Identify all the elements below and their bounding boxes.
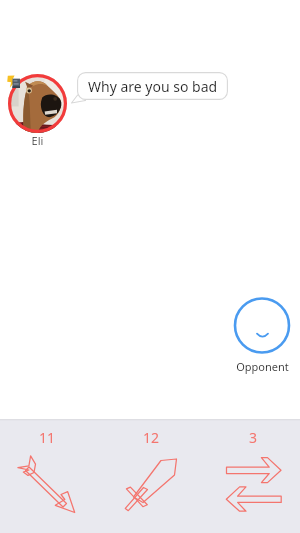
button[interactable]: Opponent bbox=[232, 298, 292, 358]
staticText: Why are you so bad bbox=[88, 77, 218, 96]
staticText: Opponent bbox=[225, 359, 300, 374]
button[interactable]: Arrow attack, 11 left bbox=[0, 419, 100, 533]
staticText: 3 bbox=[249, 428, 258, 447]
button[interactable]: Player badge bbox=[7, 75, 20, 88]
staticText: 11 bbox=[39, 428, 56, 447]
button[interactable]: Why are you so bad bbox=[77, 72, 228, 100]
button[interactable]: Eli avatar bbox=[8, 74, 67, 133]
button[interactable]: Swap, 3 left bbox=[200, 419, 300, 533]
staticText: 12 bbox=[143, 428, 160, 447]
button[interactable]: Sword attack, 12 left bbox=[100, 419, 200, 533]
staticText: Eli bbox=[8, 133, 67, 148]
